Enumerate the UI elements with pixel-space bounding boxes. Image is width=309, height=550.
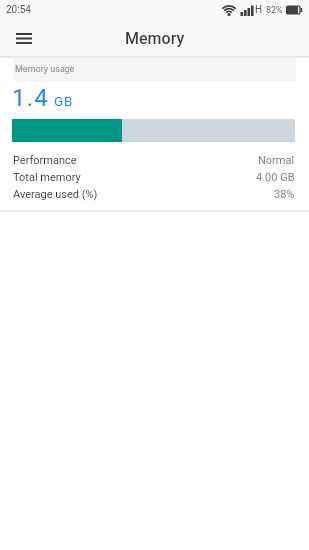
button[interactable]: Total memory xyxy=(13,169,295,186)
button[interactable] xyxy=(10,24,38,52)
staticText: 20:54 xyxy=(6,4,31,16)
staticText: Average used (%) xyxy=(13,188,98,201)
staticText: 82% xyxy=(266,5,283,16)
staticText: 38% xyxy=(274,188,295,201)
staticText: Memory usage xyxy=(15,64,75,75)
staticText: Total memory xyxy=(13,171,81,184)
staticText: Normal xyxy=(258,154,295,167)
staticText: GB xyxy=(54,93,74,109)
staticText: Performance xyxy=(13,154,77,167)
staticText: Memory xyxy=(125,29,185,48)
button[interactable]: Average used (%) xyxy=(13,186,295,203)
button[interactable]: Performance xyxy=(13,152,295,169)
staticText: 1.4 xyxy=(12,84,49,112)
staticText: 4.00 GB xyxy=(256,171,295,184)
staticText: H xyxy=(255,4,263,16)
